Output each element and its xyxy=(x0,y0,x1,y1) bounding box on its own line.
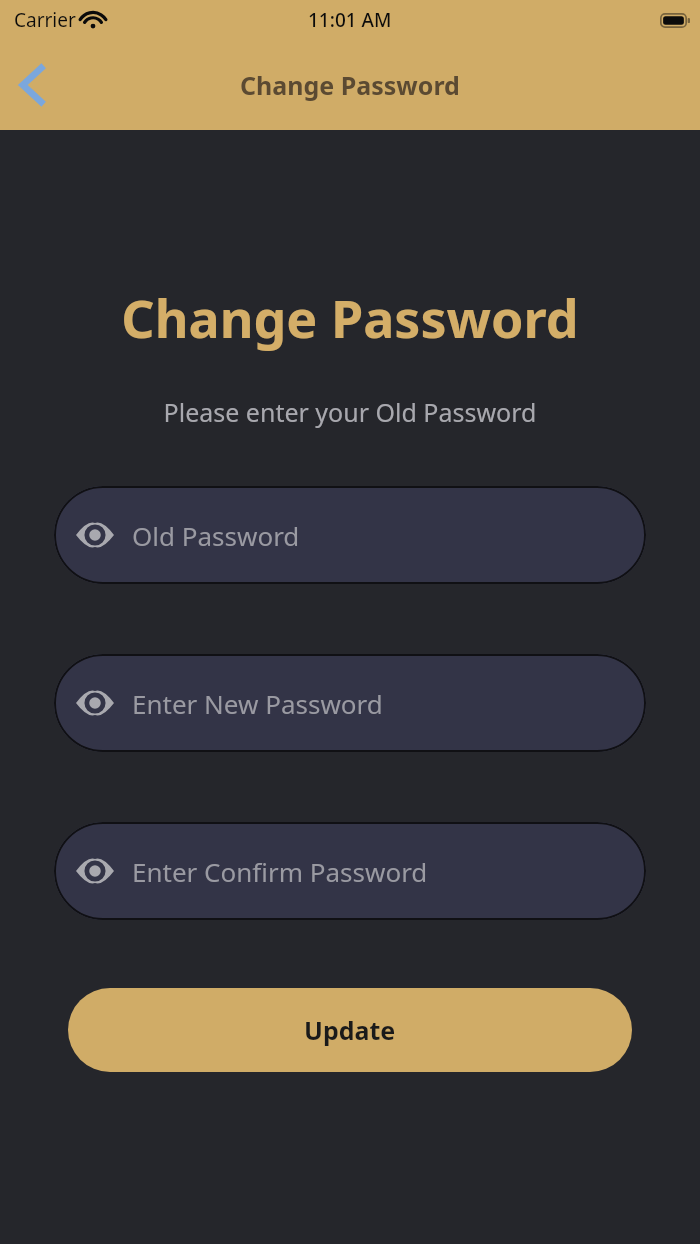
button[interactable]: Enter New Password xyxy=(54,654,646,752)
staticText: Enter New Password xyxy=(132,686,383,721)
button[interactable]: Back xyxy=(0,53,64,117)
staticText: Change Password xyxy=(240,68,460,102)
staticText: Change Password xyxy=(0,282,700,353)
staticText: Enter Confirm Password xyxy=(132,854,428,889)
button[interactable]: Update xyxy=(68,988,632,1072)
staticText: Update xyxy=(304,1013,396,1047)
staticText: Carrier xyxy=(14,7,76,33)
staticText: 11:01 AM xyxy=(308,7,392,33)
staticText: Old Password xyxy=(132,518,300,553)
button[interactable]: Old Password xyxy=(54,486,646,584)
staticText: Please enter your Old Password xyxy=(0,395,700,429)
button[interactable]: Enter Confirm Password xyxy=(54,822,646,920)
